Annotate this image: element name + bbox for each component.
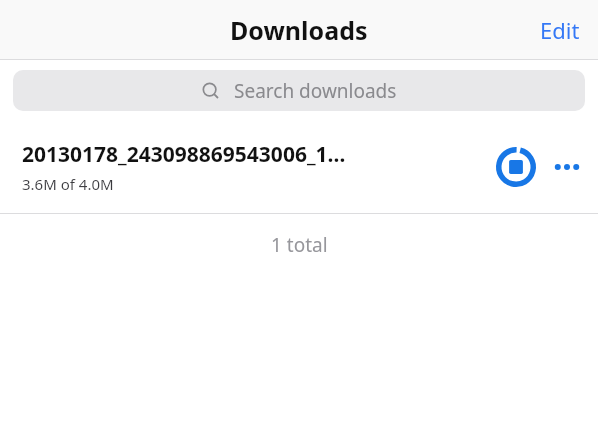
button[interactable]: Search downloads [13, 70, 585, 111]
staticText: 3.6M of 4.0M [22, 174, 114, 194]
staticText: 1 total [271, 232, 328, 258]
staticText: Search downloads [234, 78, 397, 104]
button[interactable]: 20130178_243098869543006_1… [0, 120, 598, 214]
staticText: 20130178_243098869543006_1… [22, 140, 346, 169]
staticText: Downloads [230, 13, 368, 47]
button[interactable]: More options [544, 144, 590, 190]
button[interactable]: Edit [534, 7, 586, 53]
button[interactable]: Stop download [492, 143, 540, 191]
button[interactable]: Downloads [226, 9, 372, 51]
staticText: Edit [540, 15, 580, 45]
